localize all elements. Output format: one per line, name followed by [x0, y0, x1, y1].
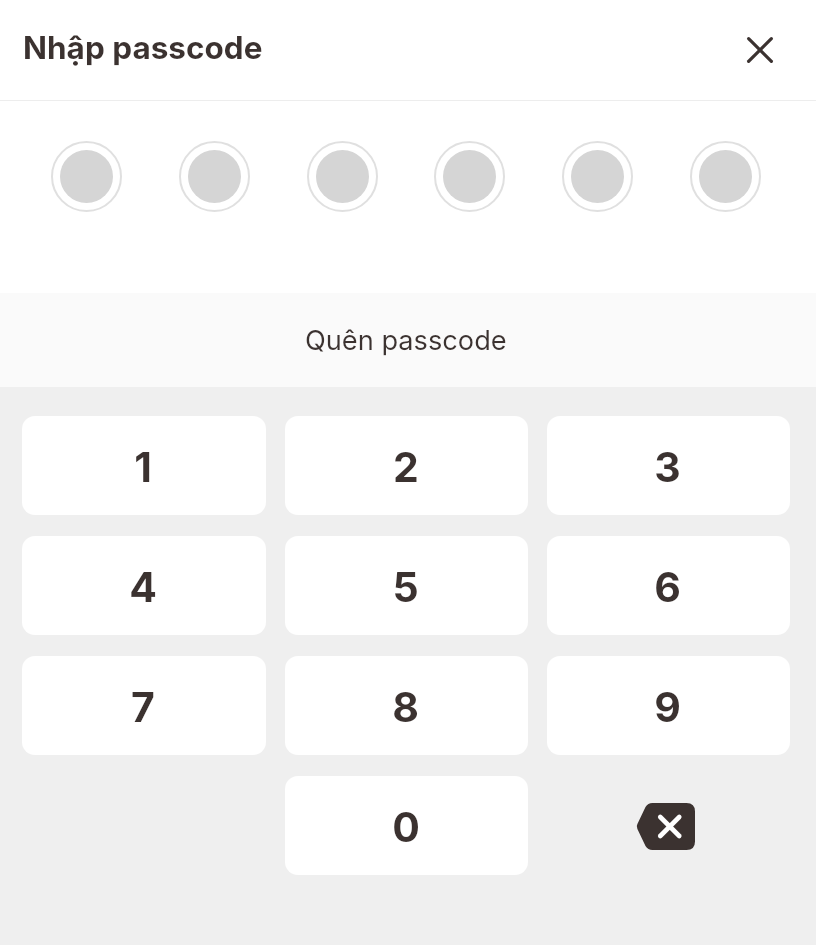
staticText: 7: [131, 682, 155, 732]
staticText: 4: [129, 562, 157, 612]
button[interactable]: 3: [547, 416, 790, 515]
staticText: Quên passcode: [305, 324, 507, 357]
button[interactable]: 0: [285, 776, 528, 875]
button[interactable]: Quên passcode: [0, 293, 816, 387]
staticText: 8: [392, 682, 419, 732]
button[interactable]: Xóa: [636, 803, 695, 850]
button[interactable]: Đóng: [734, 24, 786, 76]
button[interactable]: 2: [285, 416, 528, 515]
staticText: 3: [654, 442, 681, 492]
staticText: 6: [654, 562, 681, 612]
staticText: Nhập passcode: [23, 28, 263, 66]
staticText: 1: [134, 442, 152, 492]
button[interactable]: 8: [285, 656, 528, 755]
staticText: 2: [393, 442, 419, 492]
staticText: 5: [392, 562, 419, 612]
staticText: 9: [654, 682, 681, 732]
button[interactable]: 7: [22, 656, 266, 755]
button[interactable]: 4: [22, 536, 266, 635]
button[interactable]: 6: [547, 536, 790, 635]
staticText: 0: [392, 802, 420, 852]
button[interactable]: 1: [22, 416, 266, 515]
button[interactable]: 9: [547, 656, 790, 755]
button[interactable]: 5: [285, 536, 528, 635]
